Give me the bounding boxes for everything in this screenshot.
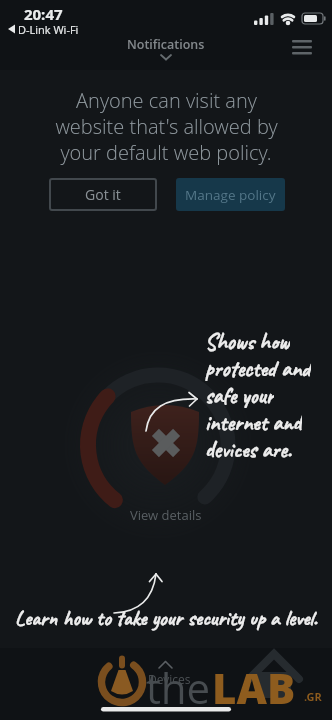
staticText: D-Link Wi-Fi <box>18 22 79 37</box>
staticText: the <box>146 659 211 716</box>
button[interactable]: Devices <box>148 671 191 687</box>
staticText: Got it <box>85 185 121 204</box>
staticText: devices are. <box>205 435 292 462</box>
staticText: Learn how to take your security up a lev… <box>15 604 318 631</box>
staticText: protected and <box>205 354 311 381</box>
staticText: Anyone can visit any <box>76 87 257 113</box>
staticText: safe your <box>205 381 274 408</box>
button[interactable]: Got it <box>49 178 157 211</box>
staticText: Manage policy <box>185 186 276 204</box>
staticText: .GR <box>304 689 322 704</box>
staticText: Shows how <box>205 327 290 354</box>
staticText: LAB <box>212 659 296 716</box>
staticText: internet and <box>205 408 302 435</box>
staticText: 20:47 <box>24 4 63 24</box>
button[interactable] <box>288 34 316 58</box>
staticText: your default web policy. <box>60 139 272 165</box>
button[interactable]: Manage policy <box>176 178 285 211</box>
button[interactable]: Notifications <box>127 36 205 53</box>
staticText: website that's allowed by <box>55 113 278 139</box>
button[interactable]: View details <box>130 506 202 524</box>
